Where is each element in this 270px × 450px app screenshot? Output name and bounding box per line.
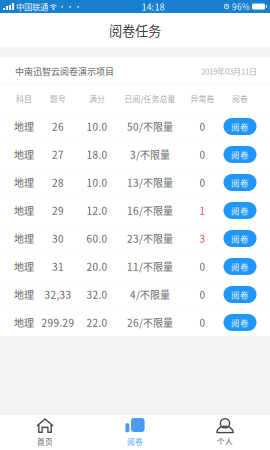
button[interactable]: 首页 [0,415,90,450]
staticText: 20.0 [86,259,107,274]
staticText: 32,33 [44,287,71,302]
staticText: 地理 [14,203,34,218]
staticText: 29 [52,203,64,218]
button[interactable]: 个人 [180,415,270,450]
staticText: 阅卷 [231,204,249,217]
staticText: 阅卷 [231,232,249,245]
staticText: 阅卷 [231,176,249,189]
button[interactable]: 阅卷 [223,286,256,303]
staticText: 2019年03月11日 [201,65,257,77]
staticText: 10.0 [86,119,107,134]
staticText: 0 [199,147,205,162]
staticText: 18.0 [86,147,107,162]
staticText: 地理 [14,119,34,134]
button[interactable]: 阅卷 [223,258,256,275]
staticText: 已阅/任务总量 [124,93,175,104]
staticText: 阅卷 [232,93,248,104]
staticText: 32.0 [86,287,107,302]
staticText: 题号 [50,93,66,104]
button[interactable]: 阅卷 [90,415,180,450]
staticText: 23/不限量 [127,231,173,246]
staticText: 16/不限量 [127,203,173,218]
staticText: 11/不限量 [127,259,173,274]
staticText: 0 [199,287,205,302]
staticText: 阅卷 [231,316,249,329]
staticText: 阅卷任务 [109,21,161,40]
button[interactable]: 阅卷 [223,146,256,163]
staticText: 299.29 [41,315,74,330]
staticText: 阅卷 [231,288,249,301]
button[interactable]: 阅卷 [223,118,256,135]
staticText: 地理 [14,175,34,190]
staticText: 27 [52,147,64,162]
staticText: 3/不限量 [130,147,170,162]
staticText: 13/不限量 [127,175,173,190]
staticText: 地理 [14,259,34,274]
staticText: 22.0 [86,315,107,330]
staticText: 60.0 [86,231,107,246]
staticText: 10.0 [86,175,107,190]
staticText: 0 [199,315,205,330]
staticText: 个人 [217,436,233,447]
staticText: 26 [52,119,64,134]
staticText: 4/不限量 [130,287,170,302]
staticText: 0 [199,259,205,274]
staticText: 地理 [14,287,34,302]
button[interactable]: 阅卷 [223,230,256,247]
staticText: 地理 [14,147,34,162]
staticText: 31 [52,259,64,274]
staticText: 科目 [16,93,32,104]
staticText: 1 [199,203,205,218]
staticText: 28 [52,175,64,190]
staticText: 地理 [14,315,34,330]
staticText: 首页 [37,436,53,447]
staticText: 阅卷 [231,148,249,161]
staticText: 阅卷 [231,120,249,133]
staticText: 阅卷 [231,260,249,273]
staticText: 14:18 [141,0,164,13]
staticText: 30 [52,231,64,246]
staticText: 12.0 [86,203,107,218]
button[interactable]: 阅卷 [223,314,256,331]
staticText: 0 [199,119,205,134]
staticText: 中南迅智云阅卷演示项目 [15,64,114,77]
staticText: 0 [199,175,205,190]
staticText: 满分 [89,93,105,104]
staticText: 阅卷 [127,436,143,447]
staticText: 26/不限量 [127,315,173,330]
staticText: 异常卷 [190,93,214,104]
staticText: ··· [58,1,82,12]
staticText: 地理 [14,231,34,246]
button[interactable]: 阅卷 [223,174,256,191]
staticText: 50/不限量 [127,119,173,134]
staticText: 3 [199,231,205,246]
staticText: 96% [232,0,250,13]
staticText: 中国联通 [16,0,48,13]
button[interactable]: 阅卷 [223,202,256,219]
